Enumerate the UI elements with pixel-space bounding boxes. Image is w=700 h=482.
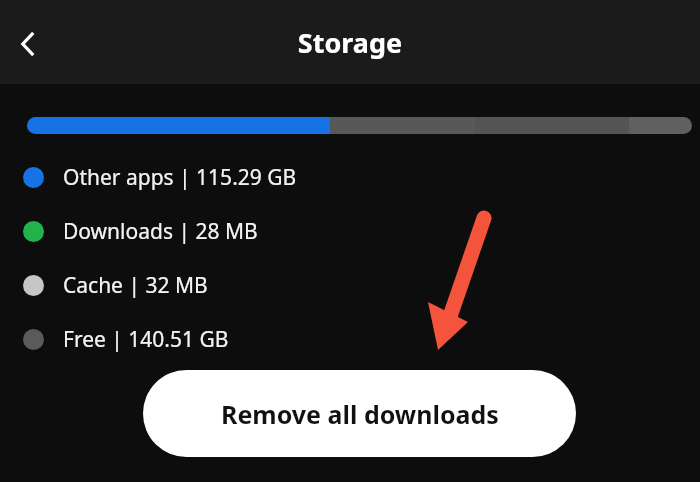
button[interactable]: Back (6, 22, 50, 66)
staticText: Cache | 32 MB (63, 271, 208, 300)
button[interactable]: Free | 140.51 GB (23, 325, 700, 354)
staticText: Storage (0, 24, 700, 61)
button[interactable]: Other apps | 115.29 GB (23, 163, 700, 192)
button[interactable]: Downloads | 28 MB (23, 217, 700, 246)
button[interactable]: Cache | 32 MB (23, 271, 700, 300)
staticText: Other apps | 115.29 GB (63, 163, 297, 192)
staticText: Downloads | 28 MB (63, 217, 258, 246)
staticText: Remove all downloads (221, 397, 499, 431)
staticText: Free | 140.51 GB (63, 325, 229, 354)
button[interactable]: Remove all downloads (143, 370, 576, 457)
